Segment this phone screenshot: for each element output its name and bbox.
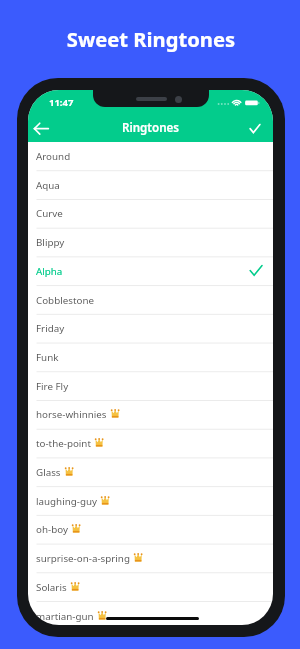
button[interactable]: Alpha xyxy=(28,257,273,286)
staticText: laughing-guy xyxy=(36,495,97,508)
staticText: 11:47 xyxy=(49,96,74,109)
button[interactable]: Friday xyxy=(28,314,273,343)
staticText: horse-whinnies xyxy=(36,408,107,421)
staticText: Aqua xyxy=(36,179,60,192)
button[interactable]: to-the-point xyxy=(28,429,273,458)
button[interactable]: Glass xyxy=(28,458,273,487)
staticText: surprise-on-a-spring xyxy=(36,552,130,565)
button[interactable]: Funk xyxy=(28,343,273,372)
staticText: Blippy xyxy=(36,236,65,249)
staticText: Alpha xyxy=(36,265,63,278)
button[interactable]: Curve xyxy=(28,199,273,228)
staticText: Cobblestone xyxy=(36,294,94,307)
button[interactable]: Back xyxy=(28,110,61,142)
button[interactable]: Around xyxy=(28,142,273,171)
staticText: Glass xyxy=(36,466,61,479)
button[interactable]: Confirm selection xyxy=(240,110,273,142)
button[interactable]: Cobblestone xyxy=(28,286,273,315)
staticText: Ringtones xyxy=(28,120,273,136)
staticText: Fire Fly xyxy=(36,380,69,393)
button[interactable]: surprise-on-a-spring xyxy=(28,544,273,573)
button[interactable]: Fire Fly xyxy=(28,372,273,401)
staticText: oh-boy xyxy=(36,523,68,536)
button[interactable]: Blippy xyxy=(28,228,273,257)
button[interactable]: oh-boy xyxy=(28,515,273,544)
staticText: Sweet Ringtones xyxy=(1,25,300,53)
staticText: Friday xyxy=(36,322,65,335)
button[interactable]: laughing-guy xyxy=(28,487,273,516)
button[interactable]: martian-gun xyxy=(28,602,273,625)
staticText: Funk xyxy=(36,351,59,364)
staticText: Around xyxy=(36,150,71,163)
button[interactable]: horse-whinnies xyxy=(28,400,273,429)
staticText: Solaris xyxy=(36,581,67,594)
staticText: Curve xyxy=(36,207,63,220)
staticText: martian-gun xyxy=(36,610,94,623)
button[interactable]: Aqua xyxy=(28,171,273,200)
staticText: to-the-point xyxy=(36,437,91,450)
button[interactable]: Solaris xyxy=(28,573,273,602)
